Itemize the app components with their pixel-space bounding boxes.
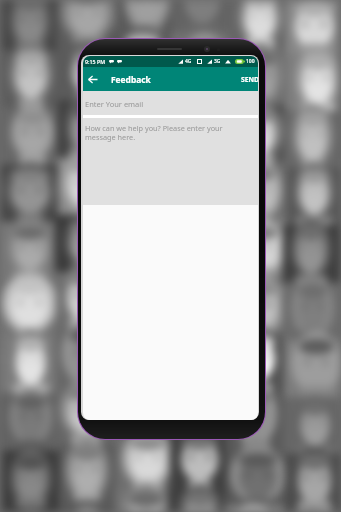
- staticText: 3G: [214, 58, 221, 65]
- staticText: How can we help you? Please enter your m…: [85, 123, 223, 143]
- button[interactable]: Back: [86, 69, 99, 89]
- staticText: Feedback: [111, 74, 151, 85]
- staticText: Enter Your email: [85, 99, 144, 109]
- button[interactable]: How can we help you? Please enter your m…: [83, 118, 258, 205]
- staticText: 9:15 PM: [85, 58, 106, 65]
- staticText: 4G: [185, 58, 192, 65]
- staticText: SEND: [241, 75, 258, 84]
- button[interactable]: Enter Your email: [83, 91, 258, 115]
- staticText: 100: [246, 58, 255, 65]
- button[interactable]: SEND: [240, 75, 258, 84]
